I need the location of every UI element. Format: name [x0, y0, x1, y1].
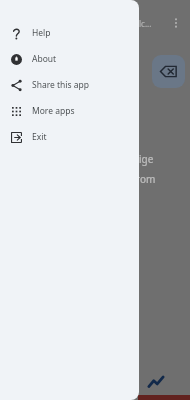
staticText: rom: [136, 172, 156, 186]
button[interactable]: Share this app: [0, 72, 139, 98]
staticText: Exit: [32, 131, 47, 143]
button[interactable]: Exit: [0, 124, 139, 150]
staticText: Help: [32, 27, 51, 39]
button[interactable]: Backspace: [152, 55, 185, 88]
staticText: About: [32, 53, 57, 65]
button[interactable]: Help: [0, 20, 139, 46]
button[interactable]: More options: [165, 12, 187, 34]
staticText: ige: [139, 152, 154, 166]
staticText: Share this app: [32, 79, 90, 91]
button[interactable]: Chart: [145, 372, 167, 394]
staticText: More apps: [32, 105, 75, 117]
button[interactable]: More apps: [0, 98, 139, 124]
button[interactable]: About: [0, 46, 139, 72]
staticText: lc...: [139, 18, 152, 29]
